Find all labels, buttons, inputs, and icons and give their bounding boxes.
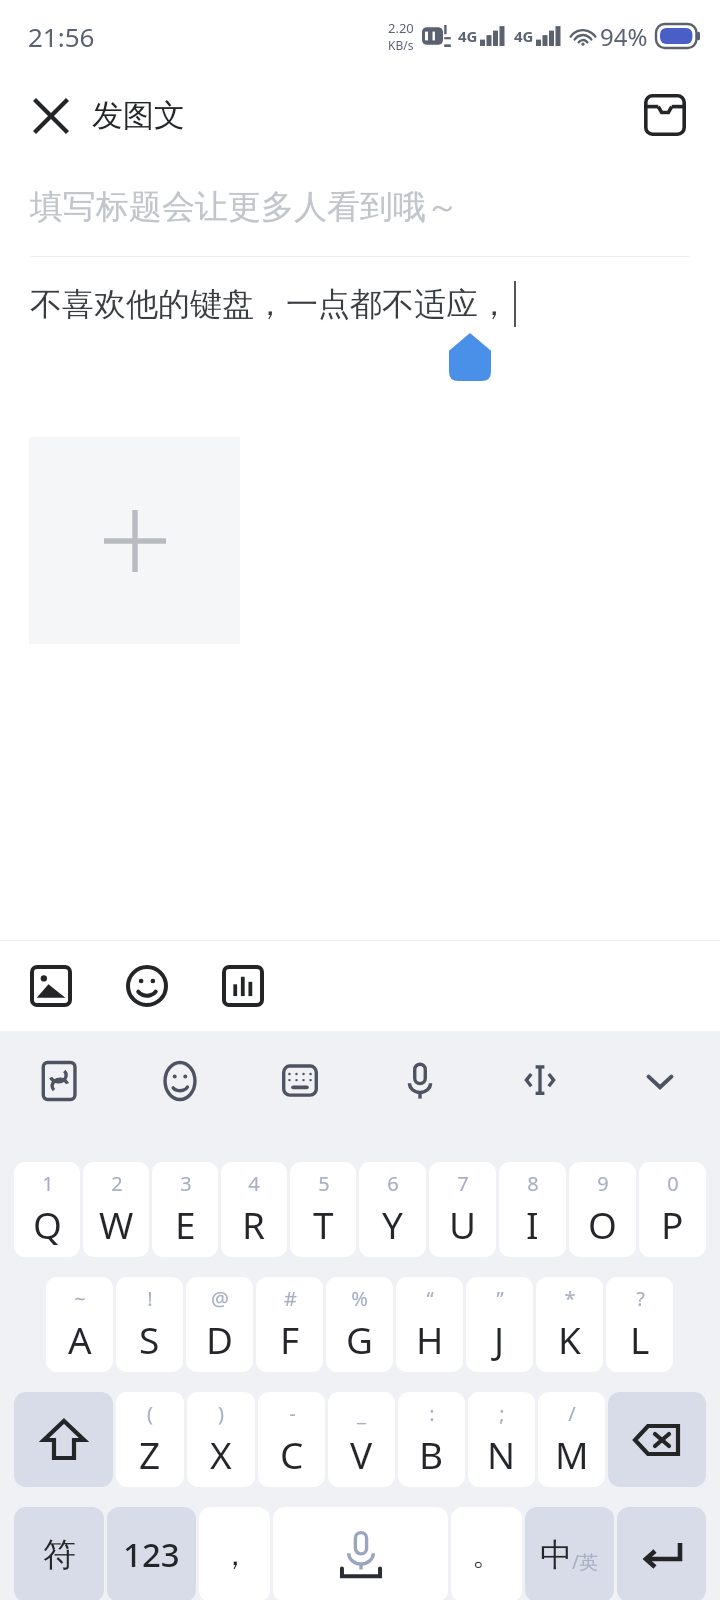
staticText: 1 [42, 1170, 54, 1197]
staticText: F [280, 1314, 300, 1364]
button[interactable]: Voice input [360, 1031, 480, 1131]
button[interactable]: Close [26, 88, 193, 143]
button[interactable]: ! [116, 1277, 183, 1372]
staticText: U [449, 1199, 477, 1249]
button[interactable]: # [256, 1277, 323, 1372]
staticText: 填写标题会让更多人看到哦～ [30, 186, 459, 228]
button[interactable]: Move cursor [480, 1031, 600, 1131]
staticText: J [494, 1314, 505, 1364]
staticText: KB/s [388, 37, 414, 53]
staticText: R [242, 1199, 266, 1249]
staticText: Q [33, 1199, 62, 1249]
staticText: 发图文 [92, 96, 185, 135]
button[interactable]: % [326, 1277, 393, 1372]
staticText: /英 [572, 1549, 599, 1575]
button[interactable]: : [398, 1392, 465, 1487]
staticText: 2 [111, 1170, 123, 1197]
button[interactable]: Keyboard layout [240, 1031, 360, 1131]
button[interactable]: ~ [46, 1277, 113, 1372]
button[interactable]: 2 [83, 1162, 149, 1257]
staticText: V [350, 1429, 373, 1479]
staticText: 4G [458, 26, 478, 46]
button[interactable]: ” [466, 1277, 533, 1372]
staticText: ” [496, 1285, 504, 1312]
staticText: 不喜欢他的键盘，一点都不适应， [30, 284, 510, 324]
other: Close [34, 99, 68, 133]
staticText: Z [139, 1429, 161, 1479]
staticText: E [175, 1199, 196, 1249]
staticText: L [630, 1314, 650, 1364]
button[interactable]: 5 [290, 1162, 356, 1257]
staticText: 9 [597, 1170, 609, 1197]
button[interactable]: ) [187, 1392, 255, 1487]
staticText: % [351, 1285, 368, 1312]
button[interactable]: 6 [359, 1162, 426, 1257]
staticText: ( [147, 1400, 153, 1427]
button[interactable]: @ [186, 1277, 253, 1372]
staticText: ! [147, 1285, 153, 1312]
staticText: / [568, 1400, 576, 1427]
button[interactable]: Shift [14, 1392, 113, 1487]
button[interactable]: Emoji [120, 1031, 240, 1131]
button[interactable]: Add image [29, 437, 240, 644]
button[interactable]: 8 [499, 1162, 566, 1257]
staticText: M [555, 1429, 589, 1479]
button[interactable]: 7 [429, 1162, 496, 1257]
staticText: 3 [180, 1170, 192, 1197]
staticText: H [416, 1314, 444, 1364]
staticText: 4G [514, 26, 534, 46]
staticText: I [526, 1199, 539, 1249]
button[interactable]: 123 [107, 1507, 196, 1600]
staticText: # [284, 1285, 297, 1312]
staticText: 。 [472, 1536, 502, 1574]
button[interactable]: - [258, 1392, 325, 1487]
staticText: ， [220, 1536, 250, 1574]
staticText: * [564, 1285, 576, 1312]
button[interactable]: 9 [569, 1162, 636, 1257]
button[interactable]: ? [606, 1277, 673, 1372]
staticText: 8 [527, 1170, 539, 1197]
button[interactable]: Add photo [22, 957, 80, 1015]
staticText: S [139, 1314, 160, 1364]
button[interactable]: ; [468, 1392, 535, 1487]
button[interactable]: 1 [14, 1162, 80, 1257]
button[interactable]: ( [116, 1392, 184, 1487]
button[interactable]: Enter [617, 1507, 706, 1600]
staticText: 中 [540, 1535, 572, 1575]
staticText: 123 [123, 1532, 180, 1577]
staticText: C [280, 1429, 304, 1479]
button[interactable]: Sogou [0, 1031, 120, 1131]
button[interactable]: / [538, 1392, 605, 1487]
button[interactable]: Space [273, 1507, 448, 1600]
staticText: 0 [667, 1170, 679, 1197]
staticText: Y [382, 1199, 403, 1249]
button[interactable]: Emoji [118, 957, 176, 1015]
button[interactable]: Drafts [636, 86, 694, 144]
button[interactable]: Hide keyboard [600, 1031, 720, 1131]
button[interactable]: 。 [451, 1507, 522, 1600]
staticText: O [588, 1199, 617, 1249]
button[interactable]: _ [328, 1392, 395, 1487]
staticText: W [99, 1199, 134, 1249]
button[interactable]: Poll [214, 957, 272, 1015]
staticText: D [206, 1314, 234, 1364]
button[interactable]: 3 [152, 1162, 218, 1257]
staticText: K [558, 1314, 581, 1364]
button[interactable]: ， [199, 1507, 270, 1600]
staticText: 5 [318, 1170, 330, 1197]
button[interactable]: * [536, 1277, 603, 1372]
button[interactable]: “ [396, 1277, 463, 1372]
button[interactable]: 中 [525, 1507, 614, 1600]
staticText: 6 [387, 1170, 399, 1197]
button[interactable]: 0 [639, 1162, 706, 1257]
button[interactable]: 填写标题会让更多人看到哦～ [0, 158, 720, 256]
button[interactable]: Backspace [608, 1392, 706, 1487]
staticText: A [68, 1314, 92, 1364]
staticText: “ [426, 1285, 434, 1312]
staticText: N [487, 1429, 516, 1479]
button[interactable]: 不喜欢他的键盘，一点都不适应， [0, 257, 720, 397]
button[interactable]: 4 [221, 1162, 287, 1257]
button[interactable]: 符 [14, 1507, 104, 1600]
staticText: B [419, 1429, 444, 1479]
staticText: 21:56 [28, 19, 95, 54]
